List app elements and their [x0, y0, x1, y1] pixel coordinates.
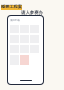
staticText: 请人参赛办: [21, 10, 43, 16]
staticText: 项目列表: [10, 19, 20, 22]
staticText: 概要工程案: [1, 4, 22, 9]
